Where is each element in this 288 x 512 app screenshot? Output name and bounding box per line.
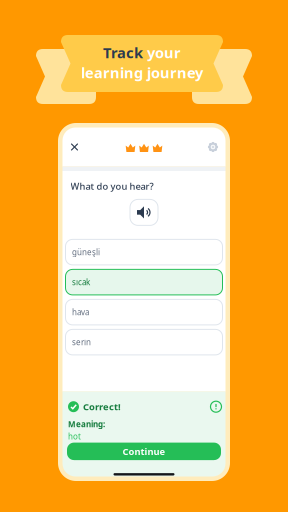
button[interactable]: Play audio [130, 199, 158, 225]
button[interactable]: Report a problem [210, 401, 221, 412]
staticText: serin [72, 337, 91, 347]
staticText: Correct! [83, 400, 121, 413]
button[interactable]: sıcak [65, 269, 222, 295]
staticText: Track [103, 43, 143, 62]
button[interactable]: hava [65, 299, 222, 325]
staticText: Continue [122, 445, 165, 458]
staticText: your [147, 43, 181, 62]
staticText: Meaning: [68, 419, 105, 429]
button[interactable]: Continue [67, 443, 221, 460]
button[interactable]: Settings [204, 138, 222, 156]
staticText: sıcak [72, 277, 90, 287]
button[interactable]: güneşli [65, 239, 222, 265]
staticText: güneşli [72, 247, 100, 257]
staticText: hava [72, 307, 89, 317]
staticText: hot [68, 431, 81, 442]
staticText: learning journey [81, 63, 203, 82]
button[interactable]: serin [65, 329, 222, 355]
staticText: What do you hear? [70, 180, 153, 192]
button[interactable]: Close [65, 138, 83, 156]
